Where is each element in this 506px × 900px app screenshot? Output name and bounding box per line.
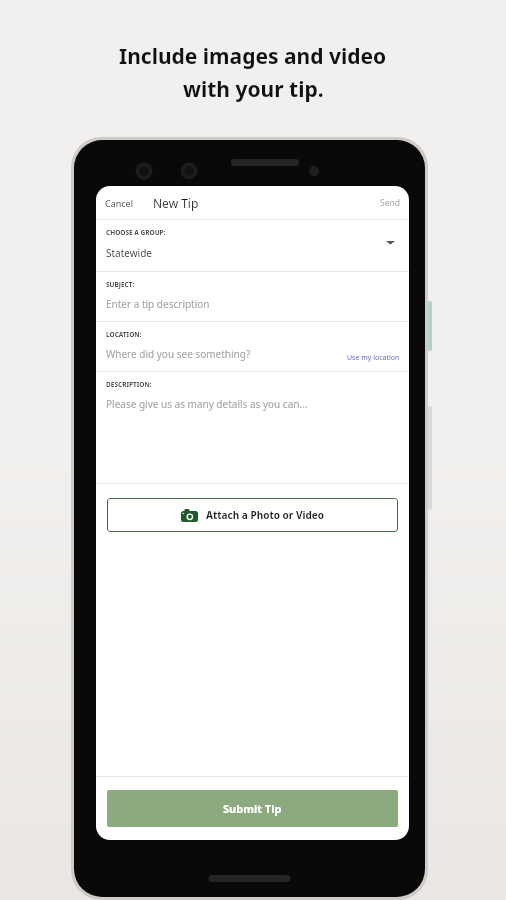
- staticText: LOCATION:: [106, 330, 142, 339]
- staticText: Statewide: [106, 246, 152, 260]
- button[interactable]: DESCRIPTION:: [96, 372, 409, 483]
- button[interactable]: Cancel: [96, 191, 142, 215]
- staticText: Where did you see something?: [106, 347, 251, 361]
- staticText: Include images and video: [119, 42, 387, 71]
- staticText: CHOOSE A GROUP:: [106, 228, 166, 237]
- staticText: SUBJECT:: [106, 280, 135, 289]
- button[interactable]: Camera: [107, 498, 398, 532]
- other: Camera: [181, 509, 198, 522]
- button[interactable]: LOCATION:: [96, 322, 409, 371]
- staticText: DESCRIPTION:: [106, 380, 152, 389]
- staticText: Send: [380, 197, 400, 209]
- staticText: Submit Tip: [223, 801, 282, 816]
- staticText: with your tip.: [183, 75, 324, 104]
- staticText: Please give us as many details as you ca…: [106, 397, 308, 411]
- button[interactable]: SUBJECT:: [96, 272, 409, 321]
- staticText: Use my location: [347, 353, 400, 363]
- staticText: New Tip: [153, 195, 199, 211]
- staticText: Enter a tip description: [106, 297, 210, 311]
- button[interactable]: CHOOSE A GROUP:: [96, 220, 409, 271]
- staticText: Cancel: [105, 197, 134, 209]
- button[interactable]: Send: [372, 191, 409, 215]
- button[interactable]: Submit Tip: [107, 790, 398, 827]
- button[interactable]: Use my location: [341, 347, 409, 371]
- staticText: Attach a Photo or Video: [206, 508, 324, 522]
- button[interactable]: Power: [428, 301, 432, 351]
